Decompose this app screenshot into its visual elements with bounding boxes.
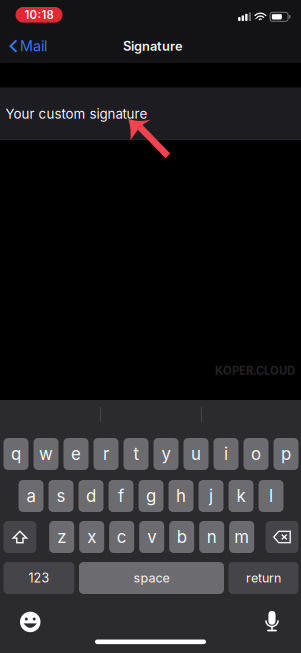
button[interactable]: c bbox=[109, 521, 134, 553]
staticText: q bbox=[11, 444, 21, 464]
button[interactable]: return bbox=[228, 562, 298, 594]
button[interactable]: Dictate bbox=[265, 610, 279, 632]
button[interactable]: l bbox=[258, 480, 283, 512]
staticText: f bbox=[118, 486, 124, 506]
staticText: i bbox=[224, 444, 228, 464]
button[interactable]: Delete bbox=[266, 521, 298, 553]
button[interactable]: s bbox=[48, 480, 73, 512]
staticText: t bbox=[133, 444, 138, 464]
button[interactable]: t bbox=[123, 438, 148, 470]
staticText: Signature bbox=[123, 38, 183, 54]
staticText: b bbox=[177, 527, 187, 547]
button[interactable]: w bbox=[33, 438, 58, 470]
staticText: w bbox=[39, 444, 53, 464]
staticText: x bbox=[87, 527, 96, 547]
button[interactable]: 123 bbox=[3, 562, 74, 594]
button[interactable]: k bbox=[228, 480, 253, 512]
button[interactable]: Mail bbox=[9, 33, 47, 59]
staticText: l bbox=[269, 486, 273, 506]
staticText: z bbox=[57, 527, 66, 547]
staticText: k bbox=[236, 486, 245, 506]
staticText: h bbox=[176, 486, 186, 506]
staticText: e bbox=[71, 444, 81, 464]
staticText: return bbox=[246, 570, 281, 586]
button[interactable]: q bbox=[3, 438, 28, 470]
staticText: KOPER.CLOUD bbox=[215, 364, 295, 378]
button[interactable]: space bbox=[79, 562, 224, 594]
staticText: Mail bbox=[20, 37, 47, 55]
staticText: u bbox=[191, 444, 201, 464]
button[interactable]: g bbox=[138, 480, 163, 512]
staticText: j bbox=[209, 486, 213, 506]
staticText: c bbox=[117, 527, 127, 547]
button[interactable]: r bbox=[93, 438, 118, 470]
staticText: g bbox=[146, 486, 156, 506]
staticText: space bbox=[133, 570, 169, 586]
button[interactable]: n bbox=[199, 521, 224, 553]
staticText: d bbox=[86, 486, 96, 506]
button[interactable]: x bbox=[79, 521, 104, 553]
staticText: n bbox=[207, 527, 217, 547]
button[interactable]: Emoji bbox=[20, 612, 40, 632]
staticText: m bbox=[234, 527, 249, 547]
button[interactable]: z bbox=[49, 521, 74, 553]
button[interactable]: e bbox=[63, 438, 88, 470]
button[interactable]: i bbox=[213, 438, 238, 470]
button[interactable]: o bbox=[243, 438, 268, 470]
staticText: a bbox=[26, 486, 35, 506]
staticText: s bbox=[56, 486, 65, 506]
button[interactable]: f bbox=[108, 480, 133, 512]
staticText: p bbox=[281, 444, 291, 464]
staticText: o bbox=[251, 444, 261, 464]
button[interactable]: Your custom signature bbox=[0, 88, 301, 140]
button[interactable]: h bbox=[168, 480, 193, 512]
staticText: Your custom signature bbox=[5, 106, 147, 122]
staticText: r bbox=[103, 444, 109, 464]
button[interactable]: v bbox=[139, 521, 164, 553]
staticText: y bbox=[161, 444, 170, 464]
staticText: 123 bbox=[28, 570, 49, 586]
button[interactable]: m bbox=[229, 521, 254, 553]
button[interactable]: Shift bbox=[3, 521, 36, 553]
button[interactable]: j bbox=[198, 480, 223, 512]
button[interactable]: u bbox=[183, 438, 208, 470]
staticText: v bbox=[147, 527, 156, 547]
button[interactable]: p bbox=[273, 438, 298, 470]
button[interactable]: b bbox=[169, 521, 194, 553]
button[interactable]: d bbox=[78, 480, 103, 512]
button[interactable]: a bbox=[18, 480, 43, 512]
staticText: 10:18 bbox=[24, 8, 53, 22]
button[interactable]: y bbox=[153, 438, 178, 470]
